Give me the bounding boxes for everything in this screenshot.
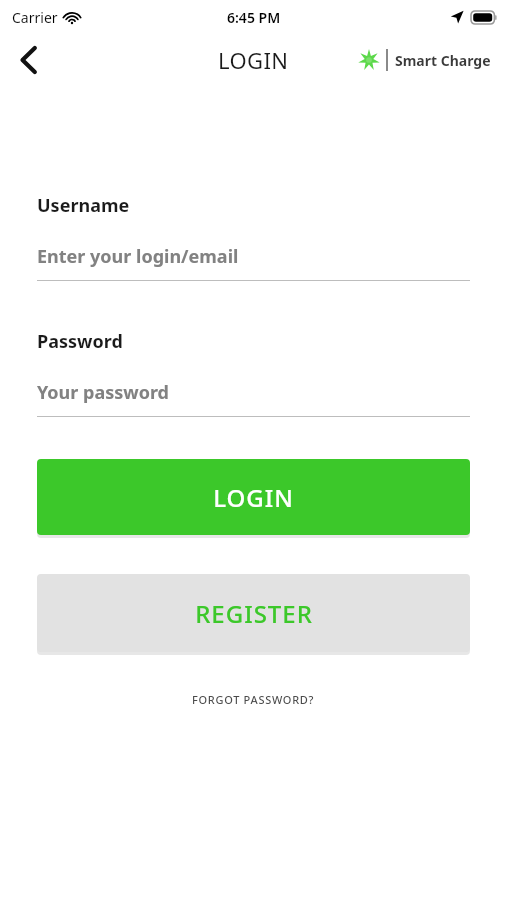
- staticText: 6:45 PM: [227, 8, 281, 27]
- staticText: Enter your login/email: [37, 244, 239, 269]
- staticText: Carrier: [12, 8, 58, 27]
- staticText: Your password: [37, 380, 169, 405]
- button[interactable]: REGISTER: [37, 574, 470, 652]
- button[interactable]: FORGOT PASSWORD?: [180, 686, 327, 713]
- staticText: REGISTER: [195, 597, 313, 630]
- staticText: LOGIN: [213, 481, 294, 514]
- staticText: Password: [37, 329, 123, 354]
- staticText: FORGOT PASSWORD?: [192, 692, 315, 707]
- button[interactable]: Smart Charge logo: [358, 49, 491, 71]
- button[interactable]: Username: [37, 193, 470, 281]
- button[interactable]: Password: [37, 329, 470, 417]
- staticText: LOGIN: [218, 45, 289, 75]
- button[interactable]: LOGIN: [37, 459, 470, 535]
- button[interactable]: Back: [6, 38, 50, 82]
- staticText: Smart Charge: [395, 51, 491, 70]
- staticText: Username: [37, 193, 130, 218]
